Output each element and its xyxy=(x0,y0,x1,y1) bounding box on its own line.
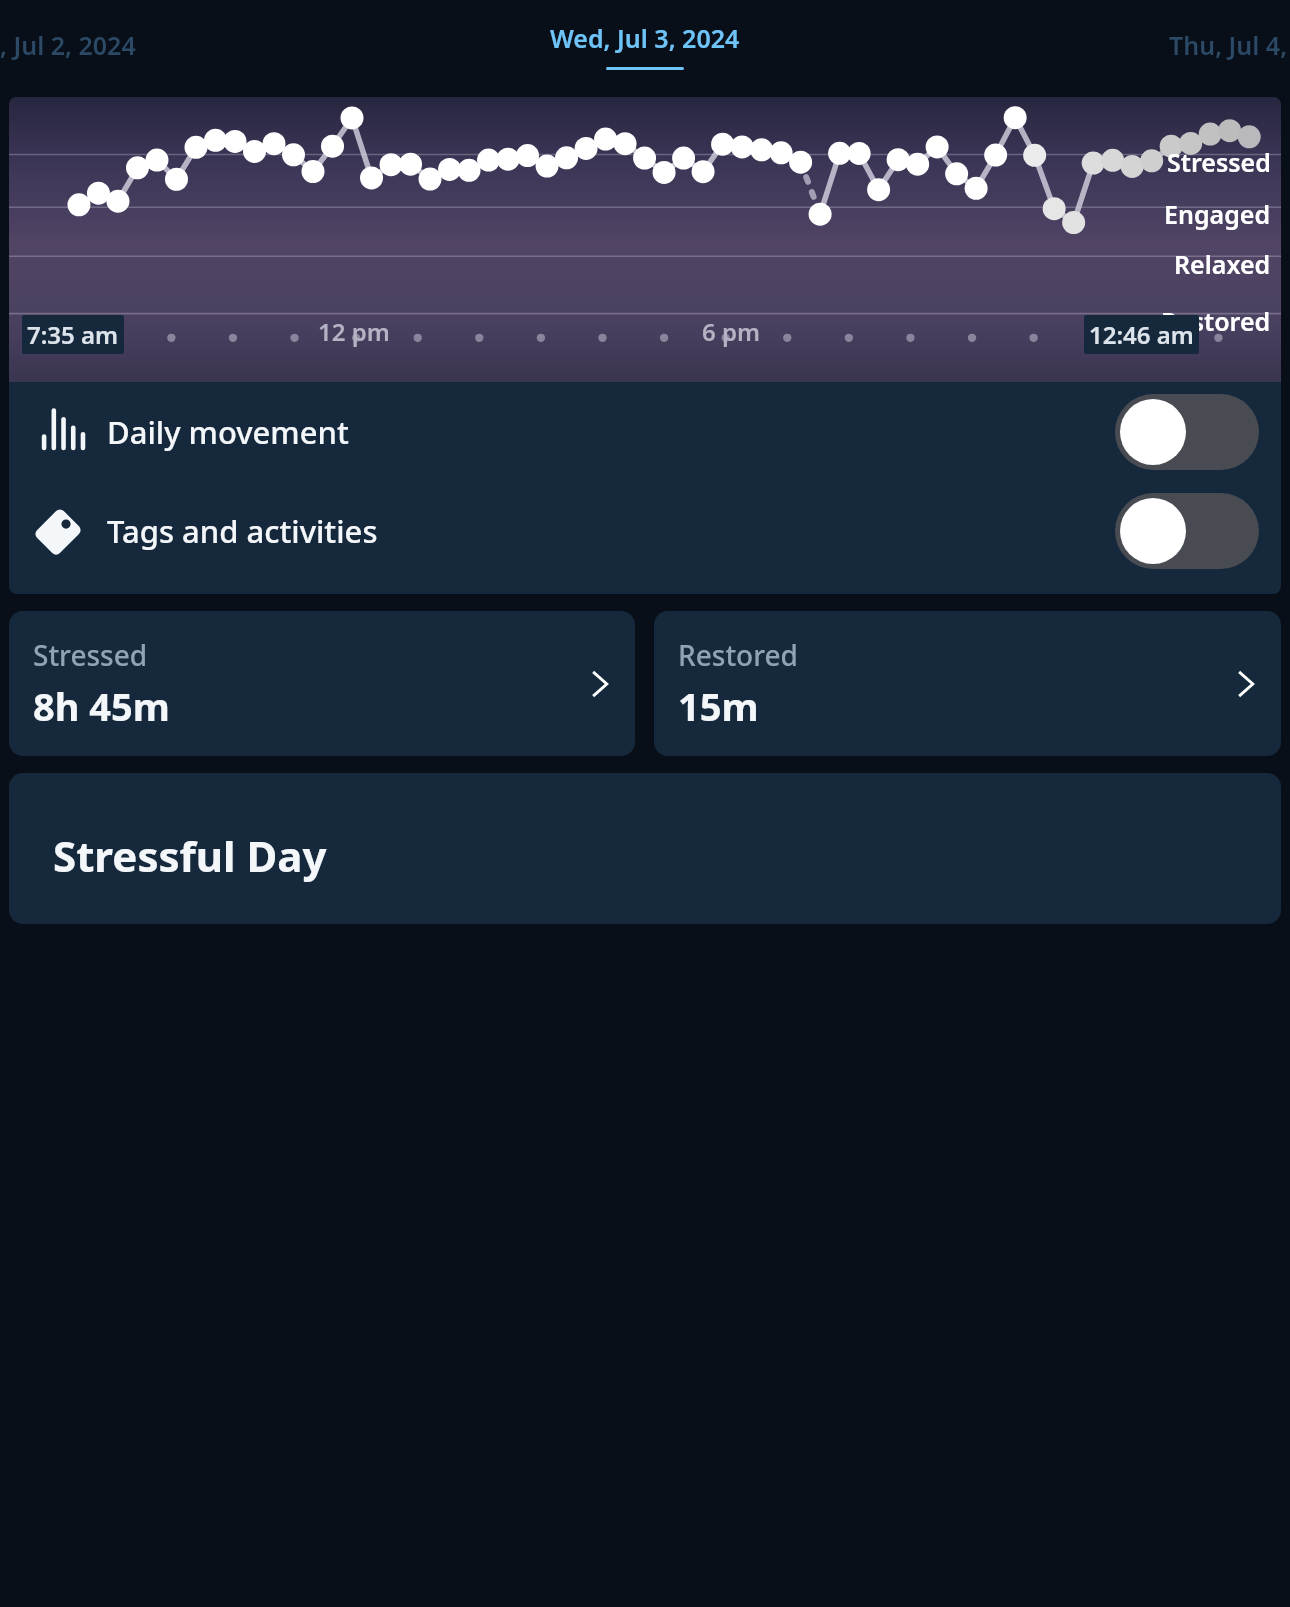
button[interactable]: Toggle Daily movement xyxy=(1115,394,1259,470)
button[interactable]: Tags and activities xyxy=(9,481,1281,580)
button[interactable]: Stressed xyxy=(9,611,635,756)
staticText: 12 pm xyxy=(318,315,390,348)
staticText: Restored xyxy=(678,636,798,674)
staticText: Daily movement xyxy=(107,411,349,453)
staticText: 15m xyxy=(678,680,759,732)
staticText: , Jul 2, 2024 xyxy=(0,28,136,62)
staticText: 12:46 am xyxy=(1089,318,1194,351)
staticText: Stressed xyxy=(1167,145,1271,179)
staticText: Tags and activities xyxy=(107,510,378,552)
staticText: Thu, Jul 4, 2 xyxy=(1169,28,1290,62)
button[interactable]: , Jul 2, 2024 xyxy=(0,22,144,68)
staticText: Stressful Day xyxy=(53,827,327,884)
button[interactable]: Wed, Jul 3, 2024 xyxy=(550,21,740,70)
button[interactable]: Restored xyxy=(654,611,1281,756)
button[interactable]: Toggle Tags and activities xyxy=(1115,493,1259,569)
staticText: Restored xyxy=(1161,304,1271,338)
button[interactable]: Thu, Jul 4, 2 xyxy=(1161,22,1290,68)
staticText: Stressed xyxy=(33,636,148,674)
staticText: Wed, Jul 3, 2024 xyxy=(550,21,740,55)
button[interactable]: Stressful Day xyxy=(9,773,1281,924)
staticText: 7:35 am xyxy=(27,318,119,351)
staticText: 6 pm xyxy=(702,315,761,348)
button[interactable]: Daily movement xyxy=(9,382,1281,481)
staticText: 8h 45m xyxy=(33,680,170,732)
staticText: Engaged xyxy=(1164,197,1271,231)
staticText: Relaxed xyxy=(1174,247,1271,281)
